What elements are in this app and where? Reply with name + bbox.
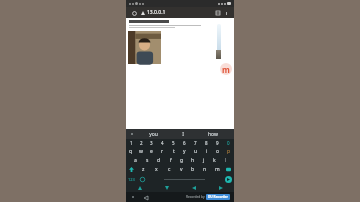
button[interactable]: m <box>211 165 223 174</box>
button[interactable]: Shift <box>126 165 137 174</box>
button[interactable]: s <box>141 156 153 165</box>
staticText: Recorded by <box>186 195 205 199</box>
button[interactable]: Down <box>153 184 180 192</box>
button[interactable]: Right <box>207 184 234 192</box>
button[interactable]: i <box>201 147 212 156</box>
staticText: 8 <box>205 140 208 146</box>
staticText: r <box>161 148 164 155</box>
staticText: q <box>129 148 133 155</box>
button[interactable]: 3 <box>146 139 157 147</box>
button[interactable]: Space <box>147 174 222 184</box>
staticText: m <box>215 166 220 173</box>
staticText: 13.0.0.1 <box>147 9 166 16</box>
staticText: 1 <box>130 140 133 146</box>
staticText: s <box>146 157 149 164</box>
button[interactable]: r <box>157 147 168 156</box>
button[interactable]: I <box>168 129 198 139</box>
button[interactable]: t <box>168 147 179 156</box>
staticText: b <box>191 166 195 173</box>
button[interactable]: c <box>163 165 175 174</box>
button[interactable]: More options <box>222 9 230 17</box>
staticText: l <box>225 157 227 164</box>
staticText: a <box>134 157 137 164</box>
staticText: u <box>194 148 198 155</box>
staticText: t <box>173 148 175 155</box>
button[interactable]: z <box>137 165 150 174</box>
button[interactable]: f <box>165 156 176 165</box>
button[interactable]: u <box>190 147 201 156</box>
staticText: w <box>139 148 143 155</box>
staticText: d <box>157 157 161 164</box>
staticText: g <box>180 157 184 164</box>
staticText: 9 <box>216 140 219 146</box>
button[interactable]: x <box>150 165 163 174</box>
staticText: k <box>213 157 216 164</box>
staticText: 4 <box>161 140 164 146</box>
button[interactable]: y <box>179 147 190 156</box>
button[interactable]: 2 <box>136 139 146 147</box>
button[interactable]: g <box>176 156 187 165</box>
button[interactable]: Bookmark <box>214 9 222 17</box>
button[interactable]: d <box>153 156 165 165</box>
staticText: how <box>208 131 218 138</box>
staticText: DU Recorder <box>208 195 228 199</box>
button[interactable]: Menu <box>130 9 138 17</box>
button[interactable]: q <box>126 147 136 156</box>
button[interactable]: Left <box>180 184 207 192</box>
button[interactable]: 4 <box>157 139 168 147</box>
staticText: 7 <box>194 140 197 146</box>
staticText: 123 <box>128 177 135 182</box>
button[interactable]: b <box>187 165 199 174</box>
button[interactable]: 0 <box>223 139 234 147</box>
staticText: 0 <box>227 140 230 146</box>
staticText: you <box>149 131 158 138</box>
staticText: y <box>183 148 186 155</box>
button[interactable]: Send <box>222 174 234 184</box>
staticText: n <box>203 166 207 173</box>
button[interactable]: 5 <box>168 139 179 147</box>
button[interactable]: o <box>212 147 223 156</box>
button[interactable]: Backspace <box>223 165 234 174</box>
staticText: x <box>155 166 158 173</box>
button[interactable]: e <box>146 147 157 156</box>
button[interactable]: a <box>129 156 141 165</box>
staticText: o <box>216 148 220 155</box>
button[interactable]: 9 <box>212 139 223 147</box>
staticText: 6 <box>183 140 186 146</box>
staticText: p <box>227 148 231 155</box>
staticText: f <box>170 157 172 164</box>
button[interactable]: you <box>138 129 168 139</box>
button[interactable]: p <box>223 147 234 156</box>
staticText: z <box>142 166 145 173</box>
button[interactable]: j <box>198 156 209 165</box>
button[interactable]: Up <box>126 184 153 192</box>
button[interactable]: Back <box>142 194 149 201</box>
staticText: 5 <box>172 140 175 146</box>
button[interactable]: k <box>209 156 220 165</box>
button[interactable]: l <box>220 156 231 165</box>
staticText: e <box>150 148 153 155</box>
button[interactable]: Voice input <box>126 129 138 139</box>
button[interactable]: 8 <box>201 139 212 147</box>
staticText: v <box>180 166 183 173</box>
staticText: c <box>168 166 171 173</box>
staticText: I <box>182 131 184 138</box>
button[interactable]: Recents <box>130 194 136 200</box>
button[interactable]: how <box>198 129 228 139</box>
button[interactable]: 123 <box>126 174 137 184</box>
staticText: m <box>222 64 230 75</box>
button[interactable]: n <box>199 165 211 174</box>
staticText: 3 <box>150 140 153 146</box>
button[interactable]: 6 <box>179 139 190 147</box>
staticText: h <box>191 157 195 164</box>
button[interactable]: 7 <box>190 139 201 147</box>
staticText: i <box>206 148 208 155</box>
staticText: 2 <box>140 140 143 146</box>
button[interactable]: 1 <box>126 139 136 147</box>
button[interactable]: w <box>136 147 146 156</box>
button[interactable]: h <box>187 156 198 165</box>
button[interactable]: v <box>175 165 187 174</box>
button[interactable]: Emoji <box>137 174 147 184</box>
staticText: j <box>203 157 205 164</box>
